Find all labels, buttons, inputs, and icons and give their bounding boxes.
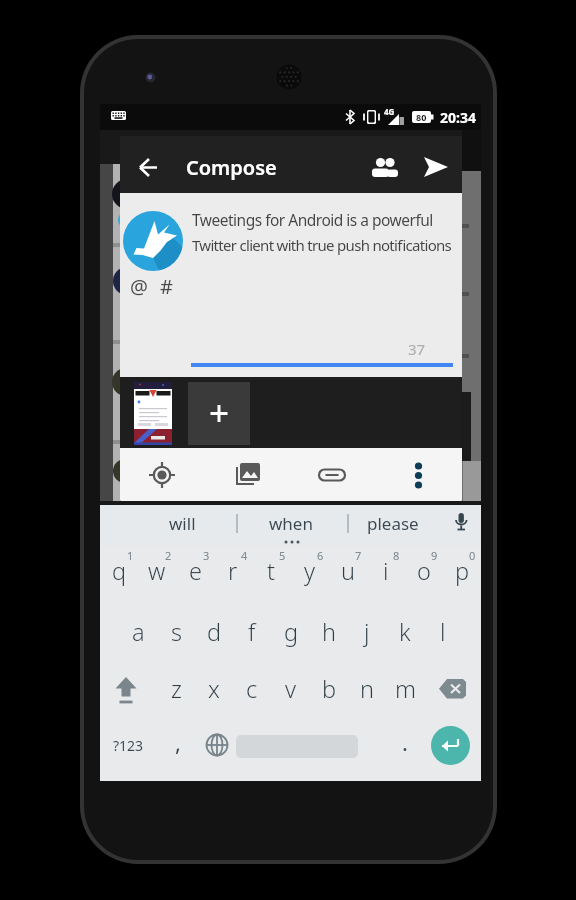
staticText: i [383,555,389,587]
button[interactable]: c [233,669,271,709]
staticText: 80 [416,111,427,123]
button[interactable] [448,510,474,536]
staticText: r [228,555,238,587]
staticText: Twitter client with true push notificati… [192,235,452,255]
staticText: will [169,512,196,535]
button[interactable] [123,211,183,271]
staticText: w [148,555,166,587]
button[interactable]: b [310,669,348,709]
button[interactable] [418,149,454,185]
staticText: 8 [393,548,400,562]
staticText: d [207,616,222,648]
staticText: 4G [384,106,395,117]
button[interactable]: y [291,551,329,591]
button[interactable]: a [119,612,157,652]
button[interactable]: i [367,551,405,591]
staticText: . [402,727,408,757]
staticText: g [284,616,299,648]
staticText: 0 [469,548,476,562]
staticText: @ [130,273,148,300]
staticText: # [160,273,173,300]
button[interactable] [399,455,439,495]
button[interactable]: j [348,612,386,652]
button[interactable]: d [195,612,233,652]
button[interactable] [107,671,145,709]
button[interactable]: o [405,551,443,591]
staticText: l [440,616,446,648]
button[interactable]: h [310,612,348,652]
staticText: , [175,727,181,757]
staticText: v [285,673,297,705]
button[interactable] [134,153,163,182]
staticText: t [267,555,275,587]
staticText: ?123 [113,736,144,755]
button[interactable]: g [272,612,310,652]
button[interactable]: z [157,669,195,709]
button[interactable]: n [348,669,386,709]
staticText: Compose [186,154,277,181]
staticText: e [189,555,202,587]
button[interactable]: r [214,551,252,591]
staticText: 20:34 [440,108,476,126]
button[interactable]: t [252,551,290,591]
staticText: Tweetings for Android is a powerful [192,209,433,230]
button[interactable]: w [138,551,176,591]
staticText: 6 [317,548,324,562]
staticText: when [269,512,313,535]
staticText: p [455,555,470,587]
staticText: 3 [203,548,210,562]
button[interactable]: when [251,509,331,537]
staticText: k [399,616,411,648]
button[interactable] [142,455,182,495]
button[interactable]: u [329,551,367,591]
staticText: y [304,555,316,587]
staticText: 37 [408,339,426,359]
staticText: f [248,616,256,648]
button[interactable] [312,455,352,495]
staticText: q [112,555,127,587]
staticText: a [132,616,145,648]
button[interactable] [435,671,473,709]
button[interactable]: . [390,727,420,757]
button[interactable]: k [386,612,424,652]
staticText: 7 [355,548,362,562]
staticText: x [208,673,220,705]
staticText: u [341,555,355,587]
button[interactable]: will [142,509,222,537]
button[interactable]: ?123 [108,731,148,759]
button[interactable] [204,732,230,758]
staticText: o [417,555,431,587]
button[interactable]: v [272,669,310,709]
staticText: z [171,673,182,705]
button[interactable] [367,149,403,185]
button[interactable]: e [176,551,214,591]
button[interactable]: please [353,509,433,537]
button[interactable]: p [443,551,481,591]
button[interactable] [431,726,470,765]
staticText: please [367,512,419,535]
staticText: 2 [165,548,172,562]
staticText: 9 [431,548,438,562]
staticText: n [360,673,374,705]
staticText: h [322,616,336,648]
staticText: c [246,673,258,705]
button[interactable]: m [386,669,424,709]
button[interactable]: s [157,612,195,652]
staticText: j [364,616,370,648]
button[interactable]: , [163,727,193,757]
staticText: 4 [241,548,248,562]
button[interactable]: f [233,612,271,652]
button[interactable] [188,382,250,445]
button[interactable]: x [195,669,233,709]
staticText: b [322,673,337,705]
button[interactable] [228,455,268,495]
staticText: m [395,673,416,705]
staticText: s [171,616,182,648]
staticText: 5 [279,548,286,562]
button[interactable]: q [100,551,138,591]
button[interactable] [134,382,172,445]
staticText: 1 [127,548,134,562]
button[interactable]: l [424,612,462,652]
